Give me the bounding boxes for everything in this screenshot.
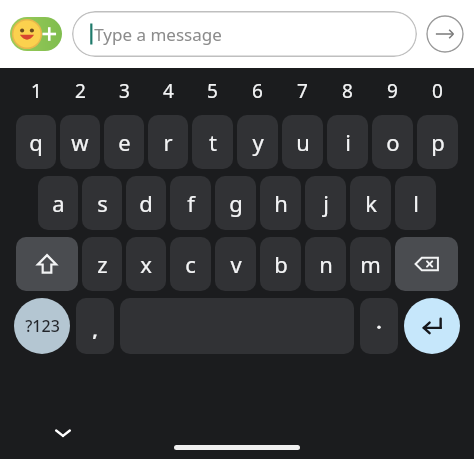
button[interactable]: u: [282, 115, 323, 169]
staticText: 8: [342, 78, 353, 104]
button[interactable]: b: [260, 237, 301, 291]
staticText: f: [187, 188, 195, 218]
staticText: x: [140, 249, 152, 279]
button[interactable]: 6: [235, 74, 280, 108]
staticText: ,: [92, 318, 98, 343]
staticText: i: [345, 127, 351, 157]
staticText: c: [185, 249, 196, 279]
button[interactable]: ?123: [14, 298, 70, 354]
button[interactable]: Hide keyboard: [46, 416, 80, 450]
staticText: b: [274, 249, 288, 279]
button[interactable]: 4: [146, 74, 190, 108]
staticText: 6: [252, 78, 263, 104]
staticText: p: [431, 127, 445, 157]
button[interactable]: w: [60, 115, 100, 169]
staticText: 0: [432, 78, 443, 104]
button[interactable]: Send: [426, 15, 464, 53]
staticText: l: [413, 188, 419, 218]
button[interactable]: Shift: [16, 237, 78, 291]
button[interactable]: Enter: [404, 298, 460, 354]
button[interactable]: n: [305, 237, 346, 291]
button[interactable]: Type a message: [72, 11, 417, 57]
button[interactable]: 3: [102, 74, 146, 108]
button[interactable]: a: [38, 176, 78, 230]
button[interactable]: 0: [415, 74, 460, 108]
button[interactable]: g: [215, 176, 256, 230]
staticText: y: [252, 127, 264, 157]
button[interactable]: 5: [190, 74, 235, 108]
button[interactable]: j: [305, 176, 346, 230]
staticText: e: [118, 127, 131, 157]
staticText: t: [209, 127, 217, 157]
staticText: Type a message: [94, 23, 222, 46]
staticText: g: [229, 188, 243, 218]
staticText: ?123: [25, 315, 60, 337]
button[interactable]: l: [395, 176, 436, 230]
button[interactable]: h: [260, 176, 301, 230]
staticText: q: [29, 127, 43, 157]
button[interactable]: t: [192, 115, 233, 169]
button[interactable]: f: [170, 176, 211, 230]
staticText: m: [360, 249, 381, 279]
button[interactable]: m: [350, 237, 391, 291]
button[interactable]: Add emoji or sticker: [10, 17, 62, 51]
staticText: s: [97, 188, 108, 218]
staticText: 3: [119, 78, 130, 104]
staticText: n: [319, 249, 333, 279]
button[interactable]: p: [417, 115, 458, 169]
staticText: 1: [31, 78, 42, 104]
button[interactable]: s: [82, 176, 122, 230]
staticText: v: [230, 249, 242, 279]
staticText: d: [139, 188, 153, 218]
staticText: 5: [207, 78, 218, 104]
button[interactable]: Period: [360, 298, 398, 354]
button[interactable]: 7: [280, 74, 325, 108]
button[interactable]: Comma: [76, 298, 114, 354]
staticText: u: [296, 127, 310, 157]
button[interactable]: 9: [370, 74, 415, 108]
staticText: z: [97, 249, 108, 279]
button[interactable]: x: [126, 237, 166, 291]
staticText: k: [365, 188, 377, 218]
staticText: r: [163, 127, 173, 157]
button[interactable]: e: [104, 115, 144, 169]
staticText: w: [71, 127, 89, 157]
button[interactable]: r: [148, 115, 188, 169]
button[interactable]: i: [327, 115, 368, 169]
button[interactable]: c: [170, 237, 211, 291]
staticText: 9: [387, 78, 398, 104]
staticText: 7: [297, 78, 308, 104]
button[interactable]: v: [215, 237, 256, 291]
button[interactable]: 2: [58, 74, 102, 108]
button[interactable]: y: [237, 115, 278, 169]
button[interactable]: q: [16, 115, 56, 169]
button[interactable]: o: [372, 115, 413, 169]
staticText: j: [323, 188, 329, 218]
button[interactable]: d: [126, 176, 166, 230]
staticText: 2: [75, 78, 86, 104]
button[interactable]: k: [350, 176, 391, 230]
button[interactable]: 8: [325, 74, 370, 108]
button[interactable]: z: [82, 237, 122, 291]
button[interactable]: 1: [14, 74, 58, 108]
staticText: h: [274, 188, 288, 218]
staticText: a: [52, 188, 65, 218]
staticText: o: [386, 127, 400, 157]
button[interactable]: Backspace: [395, 237, 458, 291]
staticText: 4: [163, 78, 174, 104]
